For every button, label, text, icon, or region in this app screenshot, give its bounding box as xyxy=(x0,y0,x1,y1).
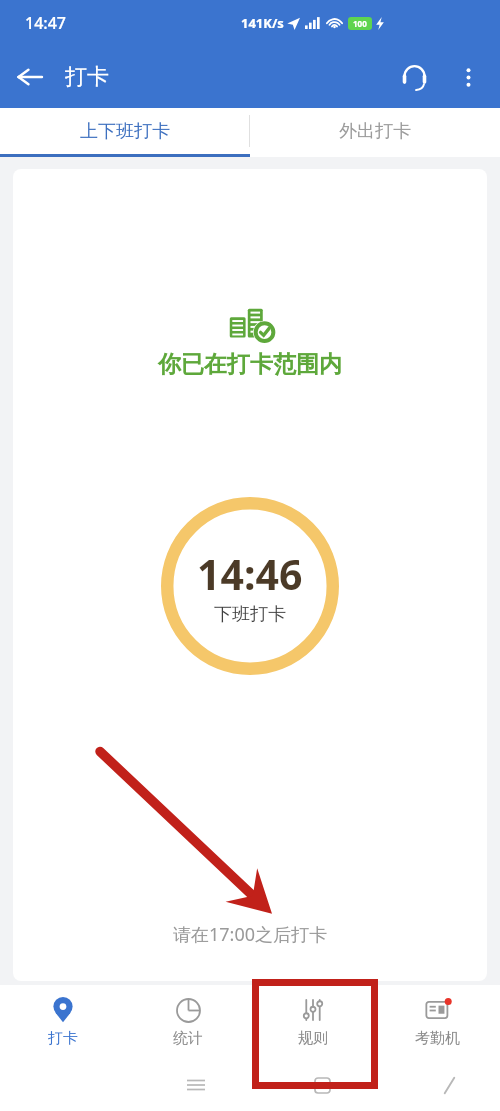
button[interactable]: 上下班打卡 xyxy=(0,108,249,154)
staticText: 统计 xyxy=(173,1029,203,1048)
button[interactable]: Back xyxy=(6,53,54,101)
staticText: 你已在打卡范围内 xyxy=(158,350,342,379)
button[interactable]: 规则 xyxy=(250,985,375,1059)
button[interactable]: More options xyxy=(444,53,492,101)
staticText: 请在17:00之后打卡 xyxy=(173,922,328,947)
staticText: 下班打卡 xyxy=(214,603,286,626)
staticText: 上下班打卡 xyxy=(80,120,170,143)
staticText: 14:46 xyxy=(197,546,303,602)
button[interactable]: 统计 xyxy=(125,985,250,1059)
button[interactable]: 考勤机 xyxy=(375,985,500,1059)
staticText: 规则 xyxy=(298,1029,328,1048)
button[interactable]: Home xyxy=(301,1064,343,1106)
staticText: 100 xyxy=(353,18,367,29)
button[interactable]: Recents xyxy=(175,1064,217,1106)
staticText: 打卡 xyxy=(65,63,109,91)
staticText: 考勤机 xyxy=(415,1029,460,1048)
button[interactable]: 打卡 xyxy=(0,985,125,1059)
button[interactable]: Customer support xyxy=(390,53,438,101)
button[interactable]: 外出打卡 xyxy=(250,108,500,154)
staticText: 14:47 xyxy=(25,12,66,34)
staticText: 外出打卡 xyxy=(339,120,411,143)
staticText: 打卡 xyxy=(48,1029,78,1048)
button[interactable]: Back xyxy=(428,1064,470,1106)
button[interactable]: 14:46 xyxy=(161,497,339,675)
staticText: 141K/s xyxy=(241,14,284,32)
